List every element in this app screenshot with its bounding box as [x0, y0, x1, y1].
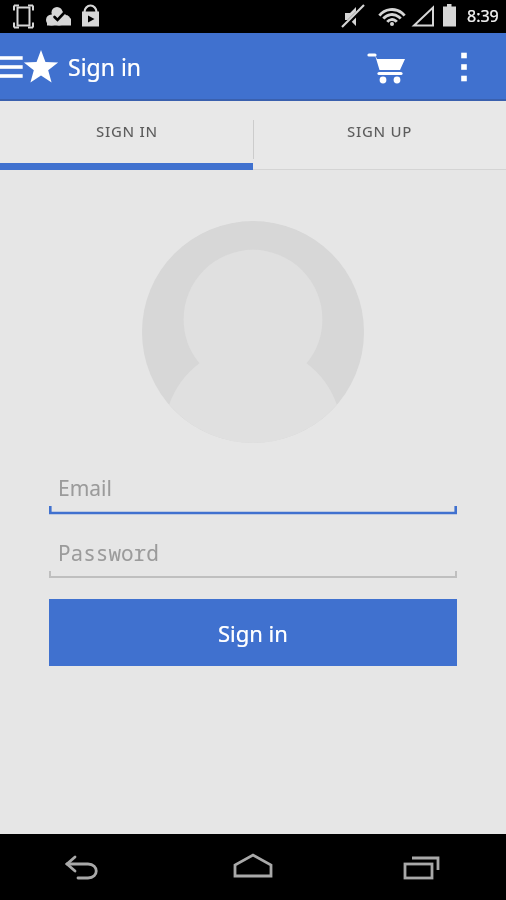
button[interactable]: Open navigation drawer	[0, 49, 27, 85]
button[interactable]: SIGN IN	[0, 101, 253, 170]
staticText: Email	[58, 474, 112, 503]
button[interactable]: More options	[441, 44, 487, 90]
button[interactable]: Shopping cart	[363, 42, 413, 92]
button[interactable]: Recent apps	[337, 834, 506, 900]
button[interactable]: Back	[0, 834, 168, 900]
staticText: SIGN UP	[347, 121, 413, 141]
staticText: 8:39	[467, 5, 499, 27]
button[interactable]: Sign in	[49, 599, 457, 666]
staticText: Sign in	[68, 51, 142, 82]
staticText: Password	[58, 539, 159, 568]
button[interactable]: Password	[49, 533, 457, 579]
button[interactable]: Home	[168, 834, 337, 900]
staticText: SIGN IN	[96, 121, 158, 141]
staticText: Sign in	[218, 618, 288, 648]
button[interactable]: SIGN UP	[253, 101, 506, 170]
button[interactable]: Email	[49, 467, 457, 515]
